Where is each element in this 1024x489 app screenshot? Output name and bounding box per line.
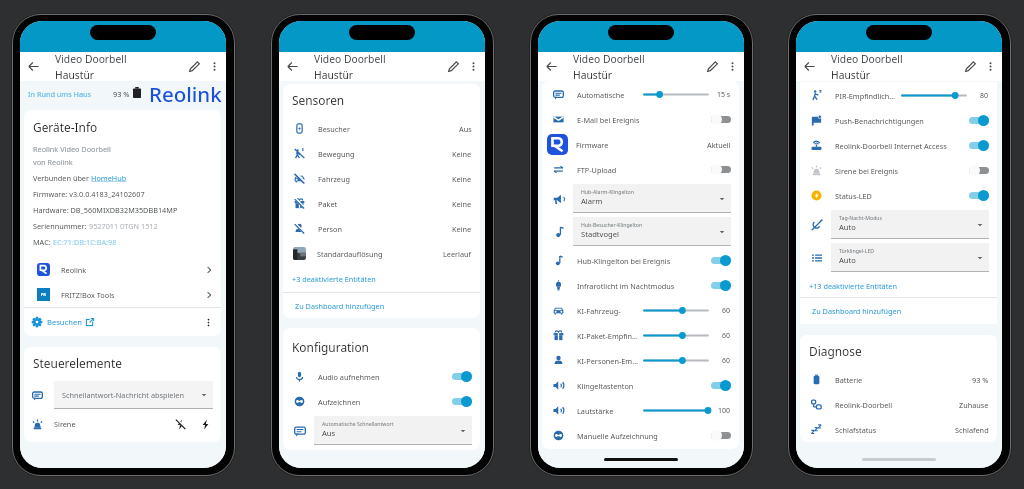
button[interactable]: Zu Dashboard hinzufügen — [295, 293, 480, 318]
button[interactable]: Tag-Nacht-Modus — [811, 208, 989, 241]
button[interactable]: Zu Dashboard hinzufügen — [812, 298, 997, 324]
button[interactable]: Status-LED — [811, 183, 989, 208]
button[interactable]: Besucher — [294, 116, 472, 141]
staticText: Paket — [318, 199, 338, 209]
button[interactable]: Reolink — [37, 257, 213, 282]
button[interactable]: Schlafstatus — [811, 417, 989, 442]
staticText: Person — [318, 224, 342, 234]
button[interactable]: Standardauflösung — [293, 241, 472, 266]
staticText: 9527011 0TGN 1512 — [89, 221, 158, 231]
staticText: E-Mail bei Ereignis — [577, 115, 640, 125]
staticText: Auto — [839, 222, 856, 232]
button[interactable]: Schnellantwort-Nachricht abspielen — [32, 380, 213, 410]
staticText: FRITZ!Box Tools — [61, 290, 115, 300]
button[interactable]: Infrarotlicht im Nachtmodus — [553, 273, 731, 298]
staticText: Haustür — [831, 68, 871, 81]
staticText: 93 % — [972, 375, 989, 385]
staticText: Audio aufnehmen — [318, 372, 380, 382]
button[interactable]: Türklingel-LED — [811, 241, 989, 274]
staticText: Reolink-Doorbell — [835, 400, 893, 410]
staticText: 80 — [980, 91, 989, 101]
staticText: Aus — [459, 124, 472, 134]
button[interactable]: Weitere Optionen — [205, 52, 224, 81]
button[interactable]: Bewegung — [294, 141, 472, 166]
staticText: Hub-Klingelton bei Ereignis — [577, 256, 671, 266]
staticText: Status-LED — [835, 191, 872, 201]
button[interactable]: Push-Benachrichtigungen — [811, 108, 989, 133]
button[interactable]: Aufzeichnen — [294, 389, 472, 414]
staticText: Video Doorbell — [314, 52, 386, 66]
button[interactable]: Besuchen — [32, 308, 213, 336]
staticText: 60 — [722, 331, 731, 341]
button[interactable]: +13 deaktivierte Entitäten — [809, 274, 997, 297]
button[interactable]: Firmware — [547, 132, 731, 157]
button[interactable]: Zurück — [796, 52, 822, 81]
staticText: Manuelle Aufzeichnung — [577, 431, 658, 441]
staticText: Alarm — [581, 196, 603, 206]
staticText: Batterie — [835, 375, 863, 385]
button[interactable]: KI-Fahrzeug-Emp… — [553, 298, 731, 323]
button[interactable]: KI-Personen-Em… — [553, 348, 731, 373]
button[interactable]: Sirene — [32, 410, 211, 438]
button[interactable]: Automatische Sc… — [553, 82, 731, 107]
staticText: HomeHub — [91, 173, 127, 183]
button[interactable]: Weitere Optionen — [981, 52, 1000, 81]
staticText: Zuhause — [959, 400, 989, 410]
button[interactable]: Klingeltastenton — [553, 373, 731, 398]
staticText: Besucher — [318, 124, 351, 134]
button[interactable]: Sirene bei Ereignis — [811, 158, 989, 183]
staticText: Haustür — [314, 68, 354, 81]
button[interactable]: Bearbeiten — [442, 52, 464, 81]
button[interactable]: Zurück — [279, 52, 305, 81]
staticText: +13 deaktivierte Entitäten — [809, 281, 897, 291]
staticText: Geräte-Info — [33, 119, 98, 135]
staticText: Diagnose — [809, 343, 862, 359]
staticText: Zu Dashboard hinzufügen — [295, 301, 385, 311]
staticText: Push-Benachrichtigungen — [835, 116, 924, 126]
button[interactable]: Automatische Schnellantwort — [294, 414, 472, 447]
button[interactable]: Reolink-Doorbell — [811, 392, 989, 417]
staticText: Besuchen — [47, 317, 82, 327]
button[interactable]: FTP-Upload — [553, 157, 731, 182]
staticText: Keine — [452, 224, 472, 234]
staticText: KI-Paket-Empfin… — [577, 331, 638, 341]
button[interactable]: E-Mail bei Ereignis — [553, 107, 731, 132]
button[interactable]: Zurück — [538, 52, 564, 81]
button[interactable]: Manuelle Aufzeichnung — [553, 423, 731, 448]
button[interactable]: Zurück — [20, 52, 46, 81]
staticText: Keine — [452, 174, 472, 184]
button[interactable]: Bearbeiten — [959, 52, 981, 81]
button[interactable]: Lautstärke — [553, 398, 731, 423]
staticText: Tag-Nacht-Modus — [839, 214, 883, 221]
button[interactable]: Paket — [294, 191, 472, 216]
staticText: Aus — [322, 428, 336, 438]
button[interactable]: Weitere Optionen — [464, 52, 483, 81]
staticText: Reolink Video Doorbell — [33, 144, 111, 154]
button[interactable]: Hub-Besucher-Klingelton — [553, 215, 731, 248]
staticText: 15 s — [717, 90, 731, 100]
button[interactable]: Batterie — [811, 367, 989, 392]
button[interactable]: Bearbeiten — [183, 52, 205, 81]
staticText: Aktuell — [707, 140, 731, 150]
button[interactable]: Fahrzeug — [294, 166, 472, 191]
staticText: Video Doorbell — [55, 52, 127, 66]
staticText: 60 — [722, 306, 731, 316]
button[interactable]: KI-Paket-Empfin… — [553, 323, 731, 348]
staticText: Steuerelemente — [33, 355, 122, 371]
button[interactable]: FR — [37, 282, 213, 307]
button[interactable]: Hub-Alarm-Klingelton — [553, 182, 731, 215]
button[interactable]: Audio aufnehmen — [294, 364, 472, 389]
button[interactable]: Reolink-Doorbell Internet Access — [811, 133, 989, 158]
button[interactable]: Hub-Klingelton bei Ereignis — [553, 248, 731, 273]
button[interactable]: +3 deaktivierte Entitäten — [292, 266, 480, 292]
staticText: Hub-Besucher-Klingelton — [581, 221, 643, 228]
button[interactable]: Bearbeiten — [701, 52, 723, 81]
staticText: Schnellantwort-Nachricht abspielen — [62, 390, 184, 400]
button[interactable]: PIR-Empfindlich… — [811, 83, 989, 108]
staticText: 60 — [722, 356, 731, 366]
staticText: Stadtvogel — [581, 229, 619, 239]
staticText: Automatische Sc… — [577, 90, 639, 100]
button[interactable]: Person — [294, 216, 472, 241]
button[interactable]: Weitere Optionen — [723, 52, 742, 81]
staticText: Standardauflösung — [317, 249, 383, 259]
